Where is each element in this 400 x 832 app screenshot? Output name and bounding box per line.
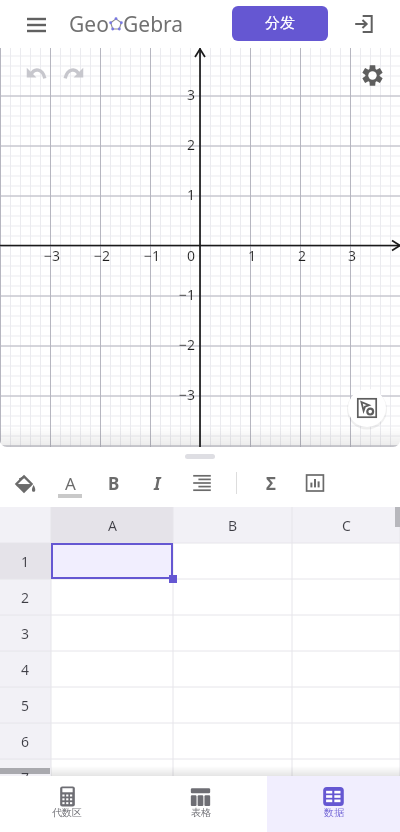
staticText: 2: [298, 246, 307, 265]
staticText: 1: [21, 552, 30, 571]
staticText: 分发: [265, 14, 295, 33]
staticText: I: [154, 472, 161, 495]
button[interactable]: Tool: [298, 466, 332, 500]
button[interactable]: 数据: [267, 776, 400, 832]
button[interactable]: 6: [0, 723, 51, 759]
staticText: 7: [21, 768, 30, 787]
staticText: 代数区: [52, 806, 82, 819]
button[interactable]: Tool: [185, 466, 219, 500]
button[interactable]: 7: [0, 759, 51, 795]
staticText: 0: [187, 246, 196, 265]
staticText: 2: [21, 588, 30, 607]
staticText: 2: [187, 135, 196, 154]
button[interactable]: 2: [0, 579, 51, 615]
staticText: B: [108, 472, 120, 495]
staticText: Σ: [266, 472, 276, 495]
button[interactable]: Redo: [56, 55, 92, 91]
staticText: −2: [94, 246, 111, 265]
staticText: 4: [21, 660, 30, 679]
staticText: 1: [187, 185, 196, 204]
button[interactable]: B: [173, 507, 292, 543]
staticText: −3: [44, 246, 61, 265]
button[interactable]: Sign in: [346, 6, 382, 42]
staticText: 数据: [324, 806, 344, 819]
button[interactable]: 表格: [133, 776, 267, 832]
button[interactable]: C: [292, 507, 400, 543]
staticText: 1: [248, 246, 257, 265]
button[interactable]: A: [51, 507, 173, 543]
button[interactable]: 代数区: [0, 776, 133, 832]
staticText: 5: [21, 696, 30, 715]
button[interactable]: Menu: [18, 6, 54, 42]
button[interactable]: Σ: [254, 466, 288, 500]
staticText: 3: [187, 85, 196, 104]
button[interactable]: 3: [0, 615, 51, 651]
button[interactable]: I: [140, 466, 174, 500]
button[interactable]: Settings: [354, 57, 390, 93]
button[interactable]: Tool: [9, 466, 43, 500]
button[interactable]: B: [97, 466, 131, 500]
button[interactable]: Undo: [18, 55, 54, 91]
staticText: −2: [179, 335, 196, 354]
button[interactable]: Select tool: [348, 389, 386, 427]
staticText: 3: [21, 624, 30, 643]
staticText: 表格: [191, 806, 211, 819]
staticText: 6: [21, 732, 30, 751]
staticText: A: [108, 516, 117, 535]
staticText: 3: [348, 246, 357, 265]
button[interactable]: 4: [0, 651, 51, 687]
staticText: Gebra: [123, 10, 184, 39]
staticText: −1: [144, 246, 161, 265]
staticText: Geo: [69, 10, 109, 39]
button[interactable]: 分发: [232, 6, 328, 41]
staticText: −1: [179, 285, 196, 304]
staticText: C: [342, 516, 351, 535]
button[interactable]: 1: [0, 543, 51, 579]
button[interactable]: A: [53, 466, 87, 500]
staticText: A: [65, 472, 76, 495]
staticText: −3: [179, 385, 196, 404]
button[interactable]: 5: [0, 687, 51, 723]
staticText: B: [228, 516, 238, 535]
